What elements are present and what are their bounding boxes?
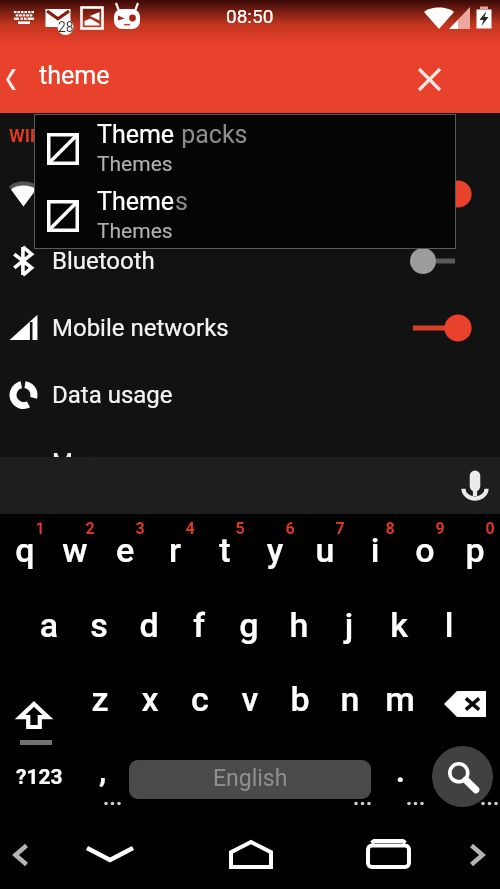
- staticText: 0: [465, 519, 500, 538]
- button[interactable]: Mobile networks toggle: [405, 303, 473, 353]
- staticText: w: [50, 530, 100, 570]
- button[interactable]: 5: [200, 514, 250, 590]
- button[interactable]: d: [124, 590, 174, 666]
- button[interactable]: b: [275, 664, 325, 740]
- staticText: English: [213, 765, 288, 792]
- button[interactable]: .: [378, 742, 423, 818]
- button[interactable]: 4: [150, 514, 200, 590]
- button[interactable]: z: [75, 664, 125, 740]
- staticText: y: [250, 530, 300, 570]
- staticText: More: [52, 448, 108, 457]
- button[interactable]: 1: [0, 514, 50, 590]
- staticText: 1: [15, 519, 65, 538]
- staticText: v: [225, 679, 275, 719]
- button[interactable]: ?123: [0, 742, 78, 818]
- button[interactable]: Wi-Fi toggle: [405, 169, 473, 219]
- staticText: c: [175, 679, 225, 719]
- button[interactable]: Bluetooth toggle: [405, 236, 473, 286]
- staticText: ?123: [16, 765, 63, 790]
- button[interactable]: Wi-Fi: [0, 160, 500, 227]
- button[interactable]: Back: [0, 820, 60, 889]
- button[interactable]: Theme: [35, 182, 455, 249]
- staticText: Data usage: [52, 381, 173, 409]
- button[interactable]: Hide keyboard: [72, 820, 150, 889]
- button[interactable]: a: [24, 590, 74, 666]
- staticText: 2: [65, 519, 115, 538]
- button[interactable]: 9: [400, 514, 450, 590]
- button[interactable]: 0: [450, 514, 500, 590]
- button[interactable]: s: [74, 590, 124, 666]
- staticText: 08:50: [226, 5, 274, 27]
- button[interactable]: f: [174, 590, 224, 666]
- staticText: packs: [175, 120, 248, 149]
- staticText: e: [100, 530, 150, 570]
- staticText: 6: [265, 519, 315, 538]
- staticText: t: [200, 530, 250, 570]
- button[interactable]: x: [125, 664, 175, 740]
- staticText: 28: [58, 19, 74, 35]
- staticText: r: [150, 530, 200, 570]
- button[interactable]: Forward: [450, 820, 500, 889]
- button[interactable]: More: [0, 428, 500, 457]
- button[interactable]: n: [325, 664, 375, 740]
- button[interactable]: Theme: [35, 115, 455, 182]
- staticText: Wi-Fi: [52, 180, 105, 208]
- staticText: p: [450, 530, 500, 570]
- staticText: b: [275, 679, 325, 719]
- staticText: a: [24, 605, 74, 645]
- button[interactable]: Back: [0, 45, 34, 113]
- staticText: i: [350, 530, 400, 570]
- button[interactable]: v: [225, 664, 275, 740]
- button[interactable]: c: [175, 664, 225, 740]
- staticText: Theme: [97, 120, 175, 149]
- staticText: l: [424, 605, 474, 645]
- staticText: 5: [215, 519, 265, 538]
- staticText: WIRELESS & NETWORKS: [9, 125, 211, 146]
- staticText: k: [374, 605, 424, 645]
- staticText: z: [75, 679, 125, 719]
- button[interactable]: h: [274, 590, 324, 666]
- button[interactable]: Search: [432, 746, 493, 807]
- button[interactable]: Data usage: [0, 361, 500, 428]
- button[interactable]: Backspace: [430, 666, 500, 742]
- staticText: m: [375, 679, 425, 719]
- button[interactable]: Bluetooth: [0, 227, 500, 294]
- button[interactable]: 7: [300, 514, 350, 590]
- button[interactable]: Clear: [403, 45, 455, 113]
- staticText: u: [300, 530, 350, 570]
- staticText: h: [274, 605, 324, 645]
- staticText: 7: [315, 519, 365, 538]
- button[interactable]: Home: [210, 820, 290, 889]
- staticText: s: [74, 605, 124, 645]
- staticText: Bluetooth: [52, 247, 155, 275]
- button[interactable]: Voice input: [447, 457, 500, 514]
- staticText: 3: [115, 519, 165, 538]
- staticText: g: [224, 605, 274, 645]
- button[interactable]: 3: [100, 514, 150, 590]
- button[interactable]: 2: [50, 514, 100, 590]
- staticText: d: [124, 605, 174, 645]
- button[interactable]: j: [324, 590, 374, 666]
- button[interactable]: Mobile networks: [0, 294, 500, 361]
- button[interactable]: ,: [80, 742, 125, 818]
- staticText: j: [324, 605, 374, 645]
- button[interactable]: 8: [350, 514, 400, 590]
- staticText: Themes: [97, 219, 173, 244]
- button[interactable]: g: [224, 590, 274, 666]
- staticText: o: [400, 530, 450, 570]
- staticText: n: [325, 679, 375, 719]
- button[interactable]: m: [375, 664, 425, 740]
- staticText: f: [174, 605, 224, 645]
- staticText: 4: [165, 519, 215, 538]
- button[interactable]: Recents: [348, 820, 428, 889]
- staticText: theme: [39, 61, 110, 90]
- staticText: Themes: [97, 152, 173, 177]
- button[interactable]: l: [424, 590, 474, 666]
- button[interactable]: Shift: [0, 666, 72, 742]
- staticText: 9: [415, 519, 465, 538]
- button[interactable]: English: [129, 760, 371, 799]
- button[interactable]: 6: [250, 514, 300, 590]
- staticText: s: [175, 187, 188, 216]
- staticText: .: [396, 754, 405, 789]
- button[interactable]: k: [374, 590, 424, 666]
